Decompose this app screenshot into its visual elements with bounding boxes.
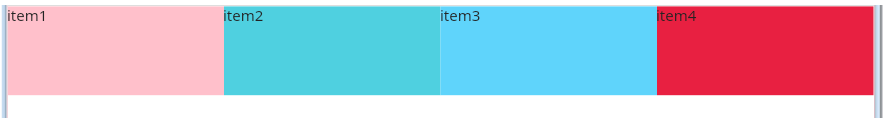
button[interactable]: Scroll left [0, 5, 8, 118]
staticText: item4 [656, 5, 697, 25]
staticText: item3 [440, 5, 481, 25]
button[interactable]: item4 [657, 6, 874, 95]
button[interactable]: Scroll right [874, 5, 885, 118]
staticText: item2 [223, 5, 264, 25]
button[interactable]: item3 [441, 6, 658, 95]
staticText: item1 [7, 5, 48, 25]
button[interactable]: item1 [8, 6, 225, 95]
button[interactable]: item2 [224, 6, 441, 95]
